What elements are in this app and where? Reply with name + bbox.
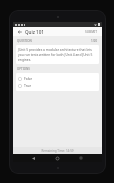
button[interactable]: False (16, 75, 99, 82)
staticText: SUBMIT (85, 30, 98, 34)
staticText: OPTIONS (17, 67, 30, 71)
button[interactable]: SUBMIT (84, 29, 99, 35)
button[interactable]: Recent apps (78, 155, 84, 161)
staticText: 1/20 (91, 39, 98, 43)
staticText: QUESTION (17, 39, 32, 43)
staticText: JUnit 5 provides a modular architecture … (18, 47, 97, 62)
staticText: True (24, 83, 32, 88)
button[interactable]: Home (54, 155, 60, 161)
button[interactable]: True (16, 82, 99, 89)
button[interactable]: Back (30, 155, 36, 161)
staticText: Quiz 101 (25, 29, 44, 35)
staticText: Remaining Time: 14:59 (41, 149, 74, 153)
staticText: False (24, 76, 33, 81)
button[interactable]: Back (16, 28, 23, 35)
